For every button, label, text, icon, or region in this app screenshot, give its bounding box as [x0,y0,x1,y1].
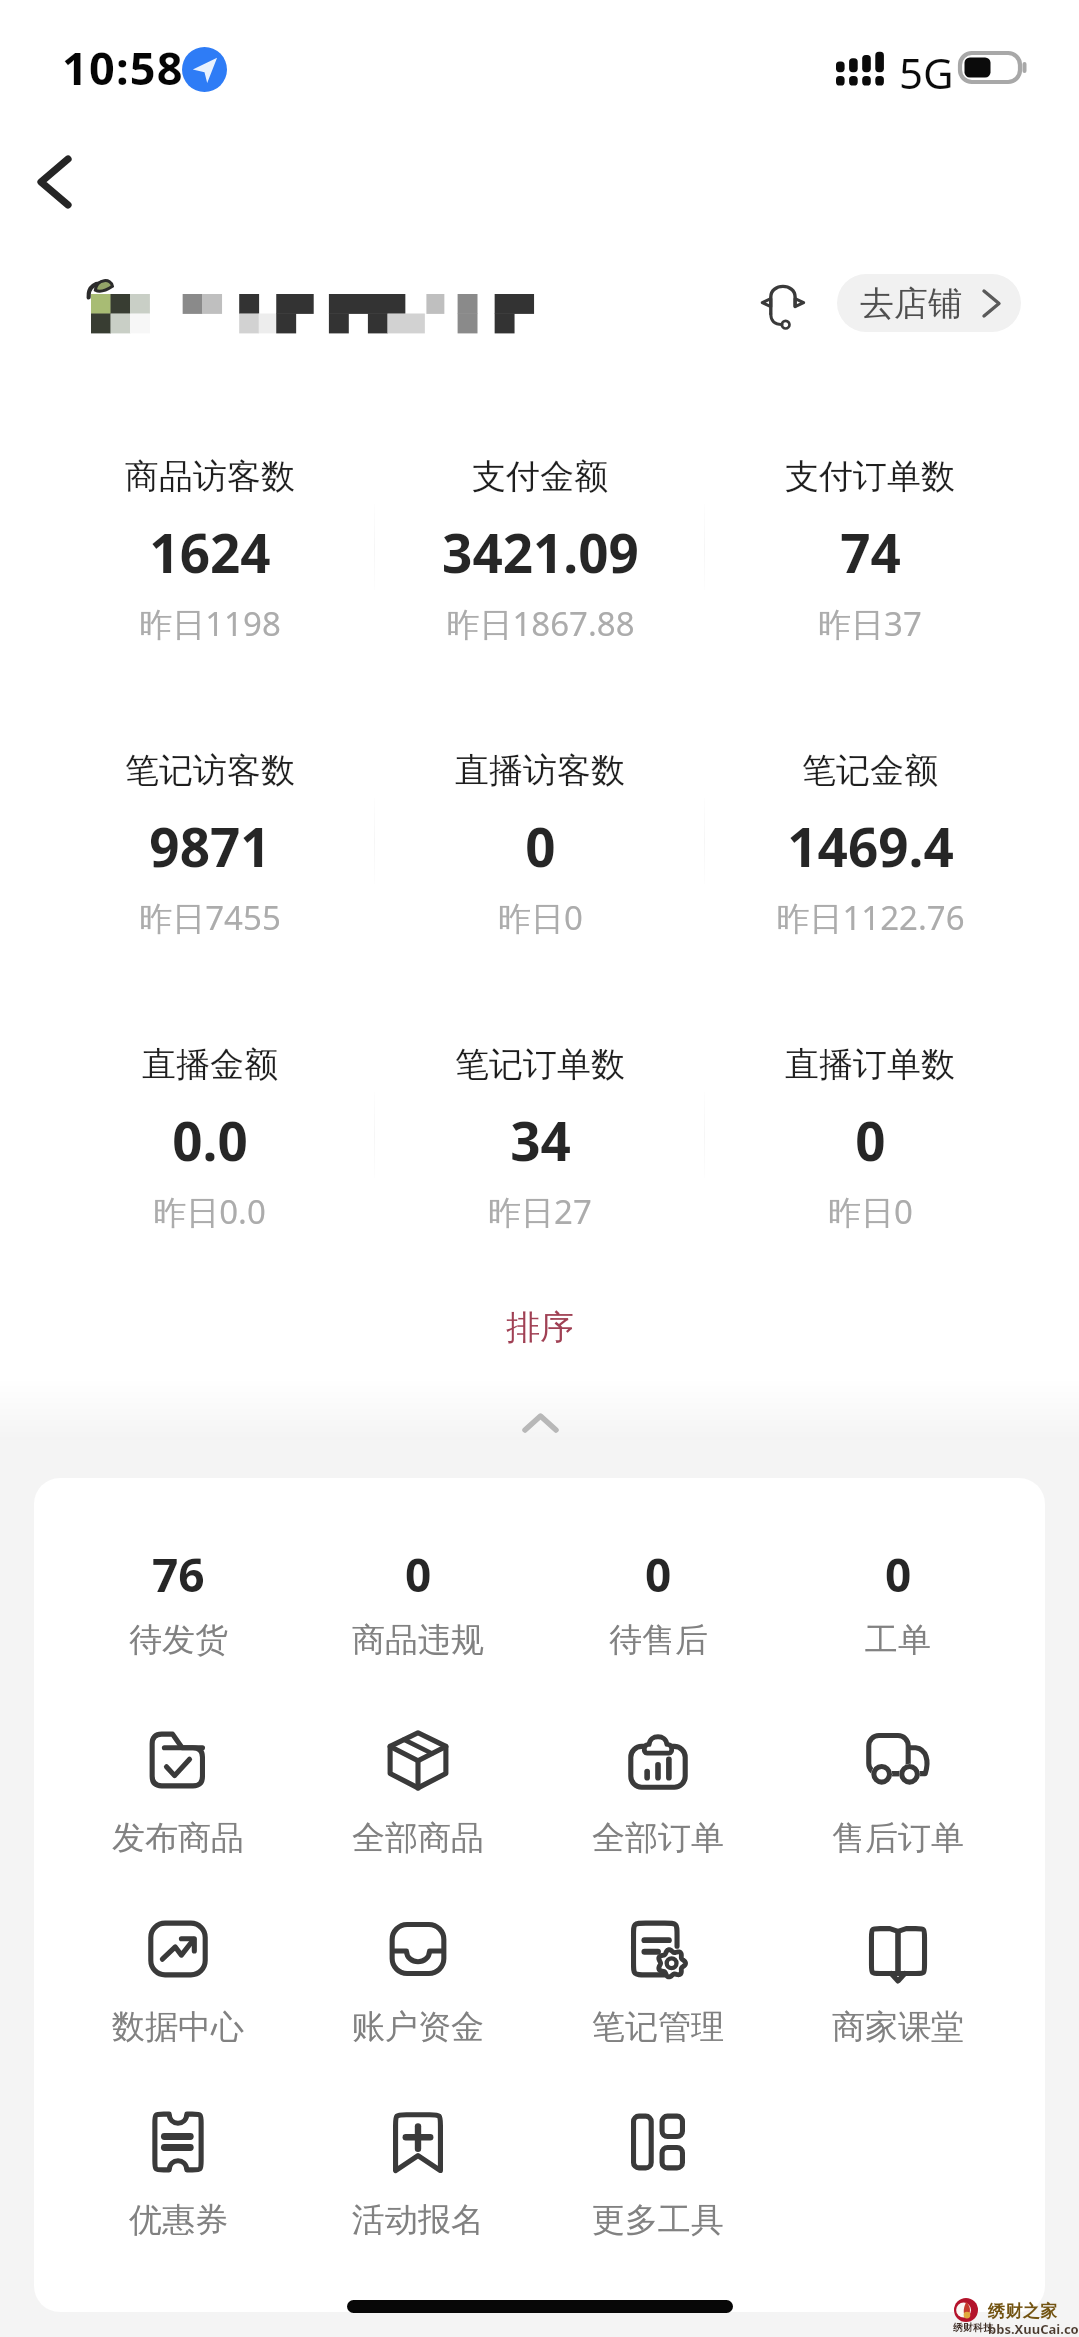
staticText: 1624 [149,516,271,588]
button[interactable]: 直播金额 [44,1028,375,1322]
button[interactable]: 去店铺 [837,274,1021,332]
staticText: 待发货 [129,1619,228,1661]
staticText: 全部商品 [352,1817,484,1859]
button[interactable]: Collapse [485,1388,595,1458]
staticText: 34 [510,1104,571,1176]
button[interactable]: Back [0,122,110,242]
button[interactable]: 笔记金额 [705,734,1035,1028]
button[interactable]: 全部订单 [538,1726,778,1859]
staticText: 1469.4 [787,810,954,882]
button[interactable]: 发布商品 [58,1726,298,1859]
staticText: 0.0 [172,1104,248,1176]
staticText: 昨日0 [498,895,583,940]
button[interactable]: 笔记管理 [538,1915,778,2048]
staticText: 昨日1198 [139,601,281,646]
staticText: 全部订单 [592,1817,724,1859]
button[interactable]: 0 [298,1543,538,1661]
staticText: 去店铺 [860,282,962,325]
staticText: 76 [152,1543,205,1606]
staticText: 昨日1867.88 [446,601,635,646]
staticText: 昨日27 [488,1189,592,1234]
button[interactable]: 商家课堂 [778,1915,1018,2048]
staticText: bbs.XuuCai.com [988,2320,1079,2337]
staticText: 5G [899,44,954,101]
staticText: 昨日7455 [139,895,281,940]
staticText: 笔记订单数 [455,1043,625,1086]
staticText: 优惠券 [129,2199,228,2241]
staticText: 绣财之家 [988,2301,1058,2322]
staticText: 昨日1122.76 [776,895,965,940]
staticText: 商品违规 [352,1619,484,1661]
staticText: 0 [885,1543,912,1606]
button[interactable]: 笔记订单数 [375,1028,705,1322]
button[interactable]: 笔记访客数 [44,734,375,1028]
staticText: 发布商品 [112,1817,244,1859]
staticText: 待售后 [609,1619,708,1661]
staticText: 商品访客数 [125,455,295,498]
staticText: 排序 [506,1306,574,1349]
staticText: 工单 [865,1619,931,1661]
staticText: 笔记访客数 [125,749,295,792]
button[interactable]: 76 [58,1543,298,1661]
staticText: 更多工具 [592,2199,724,2241]
staticText: 账户资金 [352,2006,484,2048]
button[interactable]: 优惠券 [58,2108,298,2241]
button[interactable]: 0 [778,1543,1018,1661]
staticText: 直播订单数 [785,1043,955,1086]
staticText: 74 [840,516,901,588]
staticText: 3421.09 [442,516,639,588]
button[interactable]: 更多工具 [538,2108,778,2241]
staticText: 昨日37 [818,601,922,646]
button[interactable]: 直播订单数 [705,1028,1035,1322]
button[interactable]: 直播访客数 [375,734,705,1028]
staticText: 绣财科技 [953,2321,993,2334]
button[interactable]: 全部商品 [298,1726,538,1859]
button[interactable]: 排序 [488,1302,592,1353]
staticText: 商家课堂 [832,2006,964,2048]
button[interactable]: 0 [538,1543,778,1661]
button[interactable]: 支付订单数 [705,440,1035,734]
staticText: 昨日0.0 [153,1189,266,1234]
staticText: 售后订单 [832,1817,964,1859]
button[interactable]: 账户资金 [298,1915,538,2048]
staticText: 直播访客数 [455,749,625,792]
button[interactable]: 数据中心 [58,1915,298,2048]
staticText: 直播金额 [142,1043,278,1086]
button[interactable]: Customer service [737,258,827,348]
staticText: 活动报名 [352,2199,484,2241]
staticText: 0 [645,1543,672,1606]
staticText: 数据中心 [112,2006,244,2048]
button[interactable]: 活动报名 [298,2108,538,2241]
staticText: 笔记金额 [802,749,938,792]
staticText: 昨日0 [828,1189,913,1234]
staticText: 笔记管理 [592,2006,724,2048]
staticText: 支付订单数 [785,455,955,498]
staticText: 0 [405,1543,432,1606]
staticText: 支付金额 [472,455,608,498]
staticText: 0 [525,810,556,882]
staticText: 9871 [149,810,271,882]
button[interactable]: 售后订单 [778,1726,1018,1859]
staticText: 10:58 [62,37,184,98]
button[interactable]: 商品访客数 [44,440,375,734]
button[interactable]: 支付金额 [375,440,705,734]
staticText: 0 [855,1104,886,1176]
